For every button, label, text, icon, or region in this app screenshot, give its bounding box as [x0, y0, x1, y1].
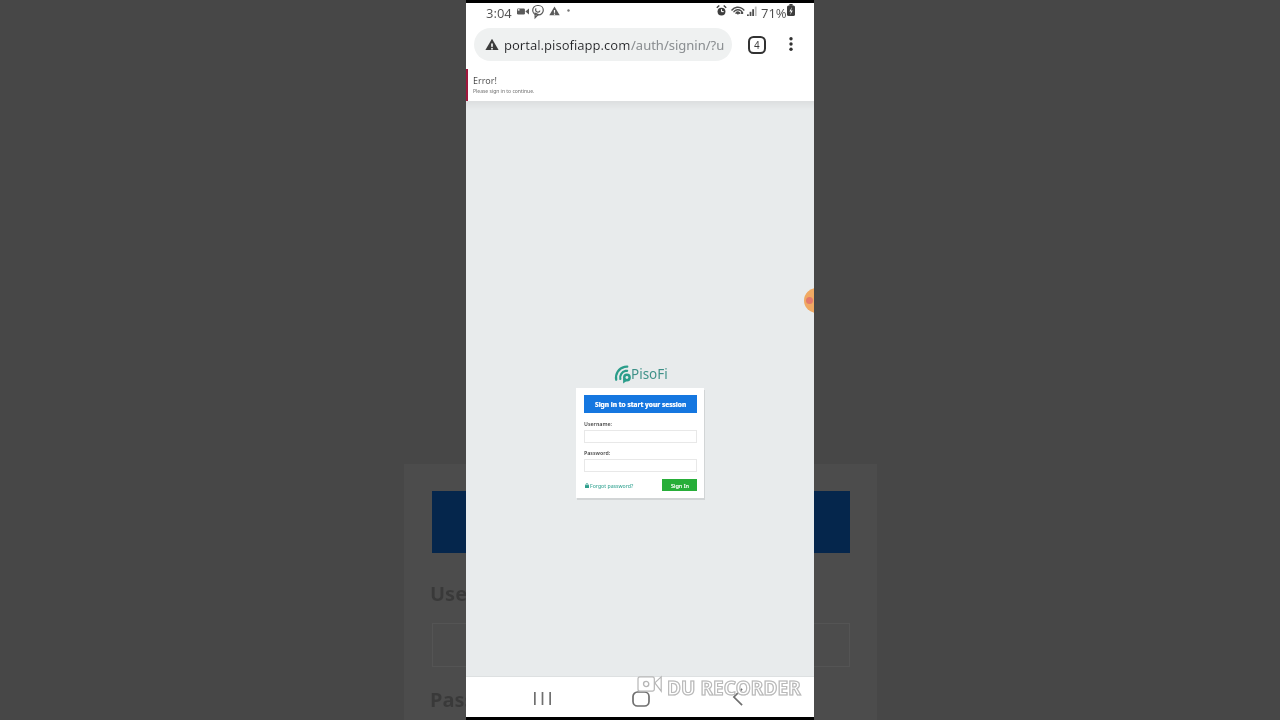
- button[interactable]: Home: [621, 683, 661, 715]
- button[interactable]: Floating assistant bubble: [804, 288, 814, 313]
- button[interactable]: Sign in to start your session: [584, 395, 697, 413]
- staticText: Password:: [584, 449, 611, 456]
- staticText: DU RECORDER: [667, 675, 801, 701]
- staticText: 4: [754, 38, 760, 52]
- staticText: PisoFi: [631, 365, 668, 383]
- button[interactable]: Recent apps: [522, 682, 562, 714]
- staticText: 3:04: [486, 4, 512, 22]
- staticText: Username:: [584, 420, 613, 427]
- button[interactable]: Forgot password?: [585, 482, 634, 489]
- staticText: Please sign in to continue.: [473, 88, 535, 95]
- staticText: DU RECORDER: [667, 675, 801, 701]
- staticText: Forgot password?: [590, 482, 634, 489]
- button[interactable]: Tabs, 4 open: [749, 37, 765, 53]
- button[interactable]: Sign In: [662, 479, 697, 491]
- staticText: User: [430, 580, 477, 607]
- staticText: Sign in to start your session: [595, 400, 687, 409]
- staticText: /auth/signin/?u: [631, 36, 725, 54]
- staticText: portal.pisofiapp.com: [504, 36, 631, 54]
- staticText: 71%: [761, 4, 787, 22]
- button[interactable]: Back: [718, 681, 758, 713]
- button[interactable]: More options: [780, 33, 802, 55]
- staticText: Error!: [473, 74, 497, 86]
- staticText: Sign In: [671, 482, 689, 489]
- button[interactable]: portal.pisofiapp.com: [474, 28, 732, 61]
- staticText: Pass: [430, 686, 475, 713]
